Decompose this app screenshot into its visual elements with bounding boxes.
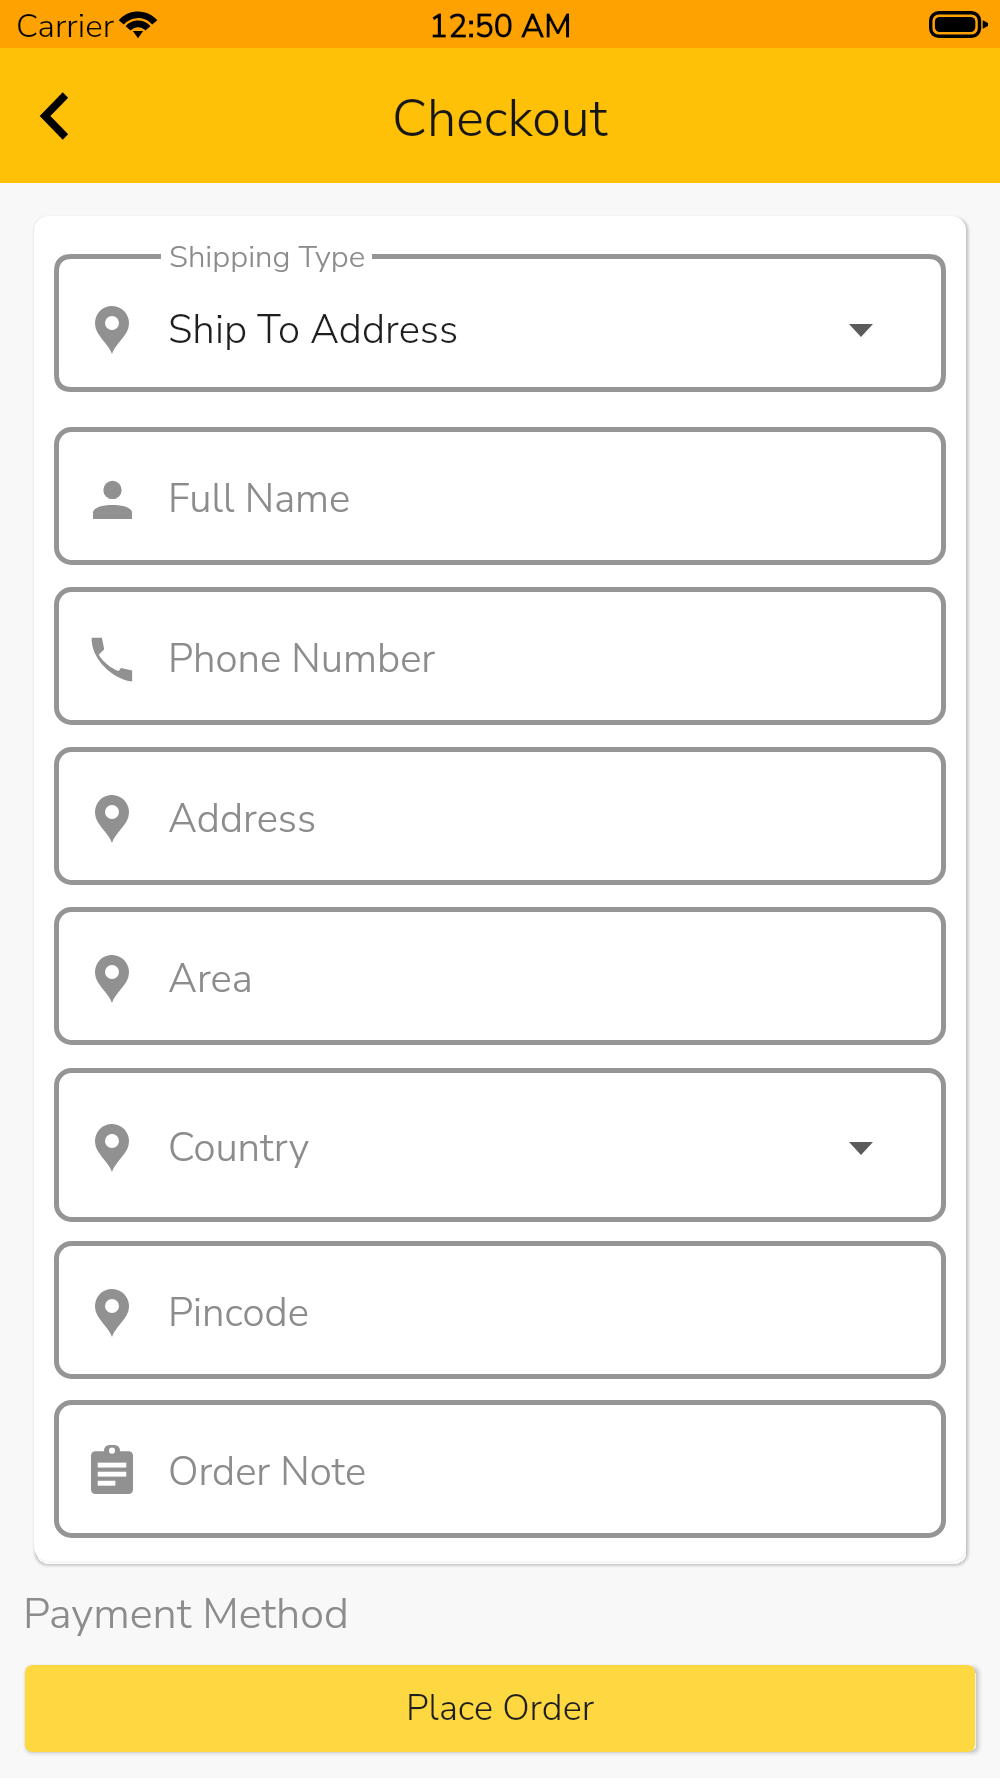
button[interactable]: Phone Number: [54, 587, 946, 725]
staticText: Order Note: [168, 1445, 367, 1500]
button[interactable]: Full Name: [54, 427, 946, 565]
staticText: Checkout: [392, 83, 608, 154]
staticText: Area: [168, 952, 253, 1007]
button[interactable]: Back: [14, 76, 94, 156]
button[interactable]: Place Order: [25, 1665, 975, 1752]
staticText: Country: [168, 1121, 310, 1176]
staticText: Phone Number: [168, 632, 436, 687]
staticText: Payment Method: [23, 1585, 349, 1644]
staticText: Ship To Address: [168, 303, 459, 358]
button[interactable]: Address: [54, 747, 946, 885]
staticText: Carrier: [16, 4, 115, 49]
staticText: Address: [168, 792, 317, 847]
staticText: Full Name: [168, 472, 351, 527]
staticText: 12:50 AM: [429, 5, 572, 49]
button[interactable]: Shipping Type: [54, 236, 946, 392]
staticText: Shipping Type: [169, 236, 366, 278]
button[interactable]: Pincode: [54, 1241, 946, 1379]
staticText: Place Order: [406, 1684, 595, 1733]
button[interactable]: Country: [54, 1068, 946, 1222]
button[interactable]: Area: [54, 907, 946, 1045]
staticText: Pincode: [168, 1286, 309, 1341]
button[interactable]: Order Note: [54, 1400, 946, 1538]
